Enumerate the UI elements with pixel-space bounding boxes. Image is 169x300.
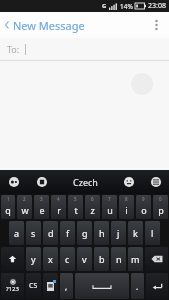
button[interactable]: 5 xyxy=(68,195,83,219)
button[interactable]: b xyxy=(94,247,109,271)
button[interactable]: f xyxy=(60,221,75,245)
staticText: To: xyxy=(7,43,20,55)
staticText: 4 xyxy=(57,196,60,202)
staticText: G xyxy=(102,2,107,10)
staticText: t xyxy=(74,204,78,216)
staticText: s xyxy=(31,227,36,239)
button[interactable]: 6 xyxy=(85,195,100,219)
button[interactable]: Insert media xyxy=(43,273,58,299)
button[interactable]: ?123 xyxy=(1,273,24,299)
staticText: 23:08 xyxy=(148,1,166,11)
staticText: 3 xyxy=(40,196,43,202)
button[interactable]: g xyxy=(77,221,92,245)
button[interactable]: . xyxy=(131,273,144,299)
staticText: c xyxy=(65,253,70,265)
staticText: r xyxy=(57,204,61,216)
button[interactable]: m xyxy=(128,247,143,271)
staticText: , xyxy=(65,281,68,292)
button[interactable]: 4 xyxy=(51,195,66,219)
button[interactable]: Backspace xyxy=(145,247,168,271)
button[interactable]: l xyxy=(145,221,160,245)
staticText: x xyxy=(48,253,53,265)
button[interactable]: Enter xyxy=(146,273,168,299)
button[interactable]: x xyxy=(43,247,58,271)
button[interactable]: y xyxy=(26,247,41,271)
staticText: e xyxy=(39,204,45,216)
button[interactable]: k xyxy=(128,221,143,245)
button[interactable]: 0 xyxy=(153,195,168,219)
staticText: CS xyxy=(29,281,38,291)
button[interactable]: More options xyxy=(143,12,169,38)
button[interactable]: New Message xyxy=(0,12,91,38)
staticText: ?123 xyxy=(6,285,19,293)
button[interactable]: 2 xyxy=(17,195,32,219)
staticText: u xyxy=(107,204,113,216)
staticText: 5 xyxy=(74,196,77,202)
staticText: k xyxy=(133,227,138,239)
button[interactable]: a xyxy=(9,221,24,245)
staticText: 7 xyxy=(108,196,111,202)
staticText: 8 xyxy=(125,196,128,202)
button[interactable]: 1 xyxy=(1,195,15,219)
staticText: 14% xyxy=(120,2,133,11)
staticText: q xyxy=(5,204,11,216)
button[interactable]: Emoji xyxy=(115,170,142,194)
staticText: n xyxy=(116,253,122,265)
button[interactable]: 9 xyxy=(136,195,151,219)
button[interactable]: j xyxy=(111,221,126,245)
button[interactable]: CS xyxy=(26,273,41,299)
staticText: p xyxy=(158,204,164,216)
staticText: m xyxy=(131,253,140,265)
staticText: h xyxy=(99,227,105,239)
staticText: w xyxy=(21,204,29,216)
button[interactable]: To: xyxy=(0,38,169,60)
button[interactable]: Keyboard settings xyxy=(0,170,28,194)
staticText: b xyxy=(99,253,105,265)
button[interactable]: d xyxy=(43,221,58,245)
staticText: New Message xyxy=(13,18,85,33)
button[interactable]: s xyxy=(26,221,41,245)
button[interactable]: 3 xyxy=(34,195,49,219)
staticText: z xyxy=(90,204,95,216)
staticText: f xyxy=(66,227,70,239)
staticText: 6 xyxy=(91,196,94,202)
staticText: 1 xyxy=(7,196,10,202)
staticText: y xyxy=(31,253,36,265)
staticText: o xyxy=(141,204,147,216)
staticText: 9 xyxy=(142,196,145,202)
button[interactable]: v xyxy=(77,247,92,271)
staticText: Czech xyxy=(73,176,98,188)
staticText: 0 xyxy=(159,196,162,202)
staticText: v xyxy=(82,253,87,265)
staticText: g xyxy=(82,227,88,239)
button[interactable]: Shift xyxy=(1,247,24,271)
staticText: d xyxy=(48,227,54,239)
button[interactable]: c xyxy=(60,247,75,271)
button[interactable]: n xyxy=(111,247,126,271)
button[interactable]: 8 xyxy=(119,195,134,219)
staticText: j xyxy=(117,227,120,239)
staticText: 2 xyxy=(23,196,26,202)
button[interactable]: Input method xyxy=(28,170,55,194)
staticText: l xyxy=(151,227,154,239)
button[interactable]: Czech xyxy=(55,170,115,194)
button[interactable]: Space xyxy=(75,273,129,299)
button[interactable]: 7 xyxy=(102,195,117,219)
staticText: i xyxy=(125,204,128,216)
staticText: . xyxy=(136,281,139,292)
staticText: a xyxy=(14,227,20,239)
button[interactable]: h xyxy=(94,221,109,245)
button[interactable]: Keyboard layout xyxy=(142,170,169,194)
button[interactable]: , xyxy=(60,273,73,299)
